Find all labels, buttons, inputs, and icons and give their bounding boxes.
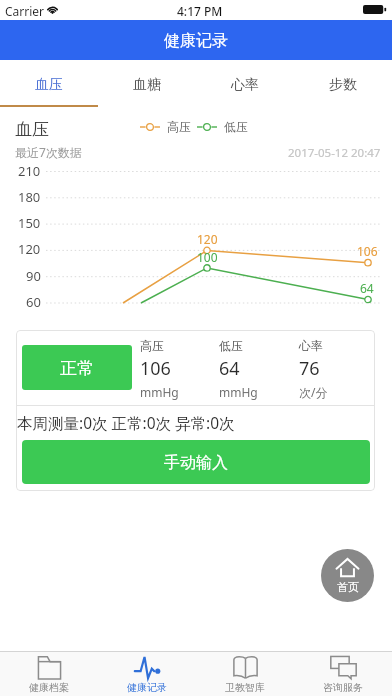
staticText: 76 — [299, 356, 320, 381]
button[interactable]: 健康记录 — [98, 652, 196, 696]
button[interactable]: 健康档案 — [0, 652, 98, 696]
staticText: 100 — [197, 249, 218, 265]
staticText: 90 — [26, 267, 41, 285]
staticText: 150 — [18, 214, 41, 232]
staticText: 64 — [360, 280, 374, 296]
staticText: 咨询服务 — [323, 681, 363, 694]
button[interactable]: 血糖 — [98, 60, 196, 105]
button[interactable]: 步数 — [294, 60, 392, 105]
staticText: 健康记录 — [127, 681, 167, 694]
button[interactable]: 手动输入 — [22, 440, 370, 484]
staticText: 血压 — [15, 119, 49, 140]
button[interactable]: 正常 — [22, 345, 132, 390]
staticText: mmHg — [140, 384, 179, 400]
button[interactable]: 首页 — [321, 549, 374, 602]
staticText: 心率 — [299, 338, 323, 353]
staticText: 健康档案 — [29, 681, 69, 694]
staticText: 180 — [18, 188, 41, 206]
staticText: mmHg — [219, 384, 258, 400]
staticText: 血糖 — [133, 76, 161, 94]
staticText: 低压 — [224, 119, 248, 134]
button[interactable]: 心率 — [196, 60, 294, 105]
staticText: 64 — [219, 356, 240, 381]
staticText: 手动输入 — [164, 453, 228, 473]
staticText: 4:17 PM — [177, 3, 223, 19]
staticText: 60 — [26, 293, 41, 311]
button[interactable]: 咨询服务 — [294, 652, 392, 696]
staticText: 首页 — [337, 580, 359, 594]
staticText: 正常 — [60, 358, 94, 379]
staticText: 低压 — [219, 338, 243, 353]
button[interactable]: 卫教智库 — [196, 652, 294, 696]
staticText: 次/分 — [299, 384, 328, 400]
staticText: 步数 — [329, 76, 357, 94]
staticText: 120 — [18, 240, 41, 258]
staticText: 本周测量:0次 正常:0次 异常:0次 — [17, 412, 235, 433]
staticText: 健康记录 — [164, 31, 228, 51]
staticText: 2017-05-12 20:47 — [288, 145, 381, 161]
staticText: 高压 — [167, 119, 191, 134]
button[interactable]: 血压 — [0, 60, 98, 105]
staticText: 106 — [357, 243, 378, 259]
staticText: 卫教智库 — [225, 681, 265, 694]
staticText: 高压 — [140, 338, 164, 353]
staticText: 最近7次数据 — [15, 144, 82, 160]
staticText: 120 — [197, 231, 218, 247]
staticText: Carrier — [5, 3, 45, 19]
staticText: 心率 — [231, 76, 259, 94]
staticText: 106 — [140, 356, 171, 381]
staticText: 血压 — [35, 76, 63, 94]
staticText: 210 — [18, 162, 41, 180]
